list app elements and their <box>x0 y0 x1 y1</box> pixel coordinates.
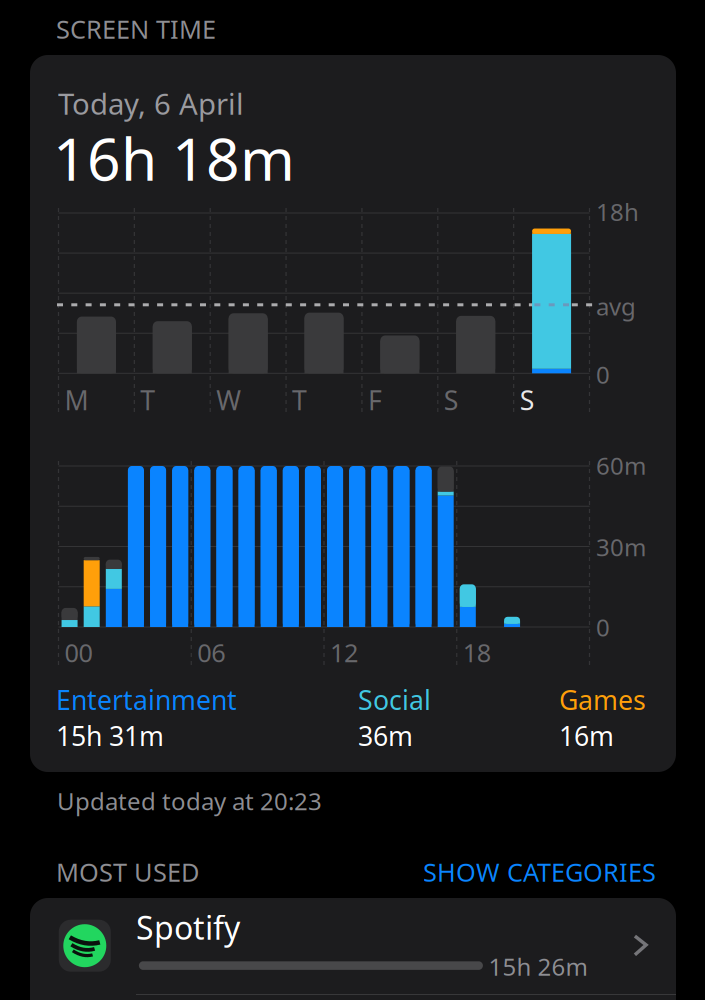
staticText: avg <box>596 290 636 322</box>
staticText: W <box>216 382 241 418</box>
staticText: S <box>520 382 535 418</box>
staticText: Today, 6 April <box>58 84 244 123</box>
staticText: 18 <box>463 635 491 669</box>
staticText: 16h 18m <box>53 119 295 197</box>
staticText: Games <box>559 682 646 717</box>
staticText: 15h 31m <box>56 718 164 753</box>
staticText: SCREEN TIME <box>56 12 216 46</box>
staticText: Updated today at 20:23 <box>57 785 322 817</box>
staticText: S <box>444 382 459 418</box>
button[interactable]: Spotify <box>0 0 646 90</box>
staticText: SHOW CATEGORIES <box>423 855 656 889</box>
staticText: MOST USED <box>56 855 199 889</box>
staticText: T <box>140 382 155 418</box>
staticText: 18h <box>596 196 639 228</box>
staticText: 16m <box>559 718 614 753</box>
staticText: 30m <box>596 531 646 563</box>
staticText: 12 <box>330 635 358 669</box>
staticText: 0 <box>596 358 610 390</box>
staticText: 06 <box>197 635 225 669</box>
staticText: Entertainment <box>56 682 237 717</box>
staticText: 0 <box>596 611 610 643</box>
staticText: T <box>292 382 307 418</box>
staticText: M <box>64 382 88 418</box>
staticText: Social <box>358 682 431 717</box>
staticText: 00 <box>64 635 92 669</box>
button[interactable]: SHOW CATEGORIES <box>0 0 233 34</box>
staticText: F <box>368 382 382 418</box>
staticText: 60m <box>596 450 646 481</box>
staticText: 15h 26m <box>489 950 588 982</box>
staticText: Spotify <box>136 906 240 948</box>
staticText: 36m <box>358 718 413 753</box>
